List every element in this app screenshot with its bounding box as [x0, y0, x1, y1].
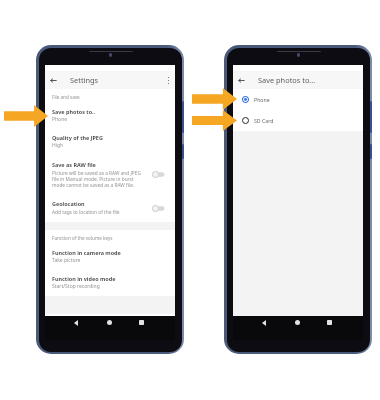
staticText: Settings — [70, 75, 99, 85]
button[interactable]: More options — [161, 73, 175, 87]
button[interactable]: Function in video mode — [45, 270, 175, 296]
staticText: Phone — [254, 96, 270, 103]
staticText: High — [52, 142, 64, 149]
button[interactable]: Phone — [233, 89, 363, 110]
button[interactable]: Home — [103, 316, 116, 329]
staticText: Geolocation — [52, 200, 85, 207]
button[interactable]: Back — [69, 316, 82, 329]
staticText: Quality of the JPEG — [52, 134, 103, 141]
staticText: Save photos to... — [258, 75, 316, 85]
staticText: Function of the volume keys — [52, 235, 113, 241]
button[interactable]: Back — [233, 72, 249, 88]
button[interactable]: Recent apps — [323, 316, 336, 329]
staticText: Picture will be saved as a RAW and JPEG … — [52, 170, 141, 188]
staticText: Start/Stop recording — [52, 283, 100, 290]
button[interactable]: Home — [291, 316, 304, 329]
staticText: Function in video mode — [52, 275, 116, 282]
staticText: Phone — [52, 116, 68, 123]
staticText: SD Card — [254, 117, 274, 124]
button[interactable]: Back — [257, 316, 270, 329]
button[interactable]: Save photos to.. — [45, 103, 175, 129]
staticText: File and save — [52, 94, 80, 100]
button[interactable]: Quality of the JPEG — [45, 129, 175, 155]
button[interactable]: Back — [45, 72, 61, 88]
staticText: Save photos to.. — [52, 108, 96, 115]
staticText: Save as RAW file — [52, 161, 96, 168]
button[interactable]: Geolocation — [45, 195, 175, 222]
button[interactable]: Recent apps — [135, 316, 148, 329]
staticText: Add tags to location of the file — [52, 209, 120, 216]
button[interactable]: SD Card — [233, 110, 363, 131]
staticText: Take picture — [52, 257, 81, 264]
button[interactable]: Function in camera mode — [45, 244, 175, 270]
button[interactable]: Save as RAW file — [45, 155, 175, 195]
staticText: Function in camera mode — [52, 249, 121, 256]
